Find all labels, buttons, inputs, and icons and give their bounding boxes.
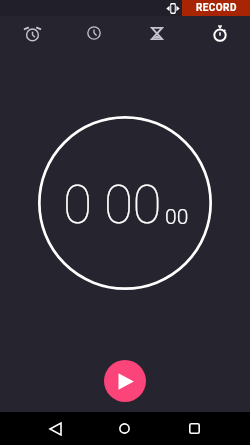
button[interactable]: Timer — [124, 16, 187, 60]
button[interactable]: Home — [109, 412, 140, 445]
button[interactable]: Alarm — [0, 16, 62, 60]
button[interactable]: Clock — [62, 16, 124, 60]
staticText: RECORD — [196, 2, 237, 14]
button[interactable]: Start — [104, 360, 146, 402]
button[interactable]: Recents — [179, 412, 210, 445]
staticText: 00 — [165, 205, 189, 230]
button[interactable]: Stopwatch — [187, 16, 250, 60]
staticText: 0 00 — [63, 174, 162, 236]
button[interactable]: Back — [40, 412, 71, 445]
